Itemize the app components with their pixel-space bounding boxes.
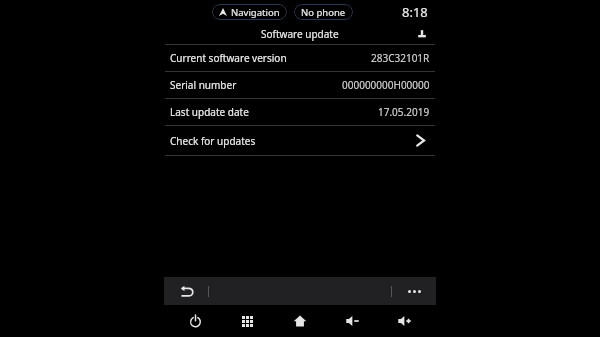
staticText: 000000000H00000 [342,78,430,92]
staticText: Current software version [170,51,287,65]
button[interactable]: Home [278,305,322,337]
staticText: Software update [261,27,339,41]
staticText: 8:18 [402,3,428,21]
button[interactable]: Check for updates [164,126,436,155]
staticText: 283C32101R [371,51,430,65]
staticText: Last update date [170,105,249,119]
button[interactable]: Volume down [331,305,375,337]
staticText: 17.05.2019 [378,105,430,119]
button[interactable]: Volume up [383,305,427,337]
button[interactable]: Serial number [164,72,436,98]
button[interactable]: Vehicle status [416,28,428,40]
staticText: No phone [301,6,346,19]
button[interactable]: No phone [294,4,353,20]
button[interactable]: More options [392,277,436,305]
button[interactable]: Apps [225,305,269,337]
button[interactable]: Current software version [164,45,436,71]
staticText: Navigation [231,6,280,19]
button[interactable]: Last update date [164,99,436,125]
button[interactable]: Power [173,305,217,337]
button[interactable]: Back [164,277,208,305]
button[interactable]: Navigation [212,4,287,20]
staticText: Check for updates [170,134,256,148]
staticText: Serial number [170,78,237,92]
